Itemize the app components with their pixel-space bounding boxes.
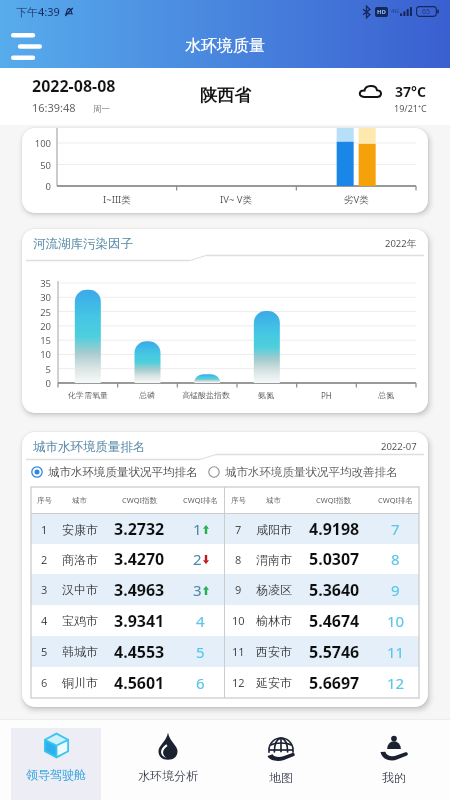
staticText: 8 [235,552,242,567]
staticText: 6 [41,675,48,690]
staticText: 4.4553 [114,641,165,663]
staticText: 3.4270 [114,548,165,570]
button[interactable]: 8 [225,544,419,574]
staticText: 城市 [72,496,87,505]
staticText: 城市水环境质量排名 [33,439,146,455]
staticText: 12 [232,675,245,690]
staticText: 100 [27,137,51,150]
staticText: 铜川市 [62,675,98,690]
staticText: 50 [27,159,51,172]
staticText: 我的 [382,770,406,785]
button[interactable]: 7 [225,514,419,544]
staticText: 2022年 [385,237,417,250]
button[interactable]: 6 [31,667,224,698]
staticText: 16:39:48 [32,100,76,115]
staticText: 韩城市 [62,644,98,659]
staticText: 杨凌区 [256,582,292,597]
staticText: 5 [196,642,205,662]
staticText: 11 [232,644,245,659]
staticText: 7 [235,522,242,537]
button[interactable]: 4 [31,605,224,636]
button[interactable]: 领导驾驶舱 [11,728,101,800]
staticText: 11 [387,642,405,662]
staticText: 领导驾驶舱 [26,767,86,782]
staticText: 西安市 [256,644,292,659]
staticText: 水环境分析 [138,768,198,783]
staticText: IV~ V类 [220,193,253,206]
staticText: 商洛市 [62,552,98,567]
button[interactable]: 我的 [337,728,450,800]
staticText: 7 [391,519,400,539]
staticText: 2 [193,549,202,569]
staticText: 4.5601 [114,672,165,694]
staticText: 城市水环境质量状况平均排名 [48,465,198,479]
staticText: 2 [41,552,48,567]
staticText: 30 [25,291,51,304]
staticText: 3 [41,582,48,597]
staticText: 水环境质量 [185,36,265,56]
button[interactable]: Menu [7,27,45,65]
staticText: 0 [25,377,51,390]
staticText: 城市水环境质量状况平均改善排名 [225,465,398,479]
staticText: 12 [387,673,405,693]
staticText: 3.9341 [114,610,165,632]
button[interactable]: 城市水环境质量状况平均改善排名 [208,465,398,479]
staticText: 宝鸡市 [62,613,98,628]
staticText: CWQI排名 [378,495,414,505]
staticText: 10 [232,613,245,628]
button[interactable]: 9 [225,574,419,605]
staticText: 4 [41,613,48,628]
staticText: 5 [25,363,51,376]
button[interactable]: 12 [225,667,419,698]
staticText: CWQI排名 [183,495,219,505]
staticText: 5.6697 [309,672,360,694]
staticText: 延安市 [256,675,292,690]
button[interactable]: 3 [31,574,224,605]
staticText: 总磷 [139,390,155,400]
staticText: 0 [27,180,51,193]
staticText: 下午4:39 [16,4,60,19]
staticText: 8 [391,549,400,569]
staticText: 化学需氧量 [68,390,108,400]
staticText: 4.9198 [309,518,360,540]
button[interactable]: 地图 [224,728,337,800]
staticText: 35 [25,277,51,290]
staticText: HD [377,8,386,16]
staticText: 2022-08-08 [32,75,116,97]
staticText: 氨氮 [258,390,274,400]
staticText: 榆林市 [256,613,292,628]
staticText: 1 [193,519,202,539]
staticText: 3.4963 [114,579,165,601]
staticText: 总氮 [378,390,394,400]
staticText: 5.5746 [309,641,360,663]
button[interactable]: 10 [225,605,419,636]
button[interactable]: 5 [31,636,224,667]
staticText: 10 [387,611,405,631]
staticText: CWQI指数 [122,495,158,505]
button[interactable]: 1 [31,514,224,544]
staticText: 地图 [269,770,293,785]
staticText: 5.4674 [309,610,360,632]
staticText: 周一 [93,104,110,115]
staticText: 4G [391,7,399,15]
staticText: 37°C [395,82,426,101]
staticText: PH [321,390,332,401]
staticText: 2022-07 [381,440,417,453]
button[interactable]: 2 [31,544,224,574]
staticText: 5.0307 [309,548,360,570]
staticText: CWQI指数 [316,495,352,505]
staticText: 15 [25,334,51,347]
button[interactable]: 水环境分析 [112,728,224,800]
staticText: I~III类 [103,193,131,206]
staticText: 9 [235,582,242,597]
staticText: 咸阳市 [256,522,292,537]
staticText: 河流湖库污染因子 [33,236,133,252]
staticText: 城市 [266,496,281,505]
staticText: 1 [41,522,48,537]
staticText: 高锰酸盐指数 [182,390,230,400]
staticText: 劣V类 [344,193,369,206]
button[interactable]: 11 [225,636,419,667]
button[interactable]: 城市水环境质量状况平均排名 [31,465,198,479]
staticText: 序号 [231,496,246,505]
staticText: 10 [25,348,51,361]
